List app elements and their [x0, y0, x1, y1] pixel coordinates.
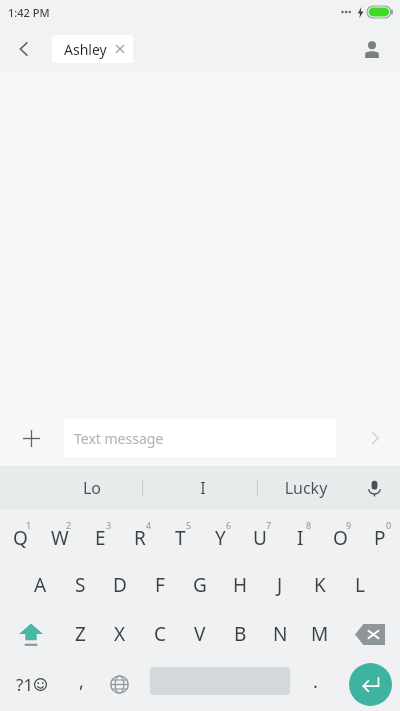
staticText: Z — [75, 621, 86, 647]
staticText: 1:42 PM — [8, 5, 50, 20]
staticText: D — [113, 572, 127, 598]
button[interactable]: 9 — [320, 509, 360, 559]
staticText: 7 — [266, 519, 272, 531]
staticText: 2 — [66, 519, 72, 531]
staticText: Ashley — [64, 40, 107, 59]
button[interactable]: I — [190, 477, 216, 499]
staticText: M — [311, 621, 329, 647]
button[interactable]: A — [20, 559, 60, 610]
button[interactable]: 0 — [360, 509, 400, 559]
button[interactable]: 3 — [80, 509, 120, 559]
button[interactable]: C — [140, 610, 180, 658]
staticText: J — [277, 572, 283, 598]
button[interactable]: G — [180, 559, 220, 610]
staticText: R — [134, 525, 146, 551]
button[interactable]: Lo — [78, 477, 106, 499]
staticText: F — [155, 572, 165, 598]
button[interactable]: 4 — [120, 509, 160, 559]
button[interactable]: Z — [60, 610, 100, 658]
staticText: , — [79, 669, 84, 694]
button[interactable]: , — [62, 658, 100, 711]
button[interactable]: 7 — [240, 509, 280, 559]
button[interactable]: Shift — [0, 610, 62, 658]
staticText: W — [51, 525, 69, 551]
staticText: H — [233, 572, 248, 598]
staticText: ?1 — [16, 673, 34, 696]
button[interactable]: 8 — [280, 509, 320, 559]
staticText: V — [194, 621, 206, 647]
staticText: Y — [215, 525, 226, 551]
button[interactable]: N — [260, 610, 300, 658]
button[interactable]: L — [340, 559, 380, 610]
button[interactable]: S — [60, 559, 100, 610]
staticText: 0 — [386, 519, 392, 531]
staticText: L — [355, 572, 365, 598]
button[interactable]: Ashley — [52, 35, 133, 63]
button[interactable]: 2 — [40, 509, 80, 559]
button[interactable]: Change language — [100, 658, 138, 711]
staticText: S — [75, 572, 86, 598]
button[interactable]: 5 — [160, 509, 200, 559]
button[interactable]: Enter — [340, 658, 400, 711]
button[interactable]: 1 — [0, 509, 40, 559]
staticText: N — [273, 621, 288, 647]
staticText: K — [314, 572, 326, 598]
button[interactable]: Send — [358, 421, 392, 455]
button[interactable]: Add attachment — [14, 421, 48, 455]
staticText: I — [297, 525, 304, 551]
staticText: Q — [13, 525, 28, 551]
staticText: 8 — [306, 519, 312, 531]
button[interactable]: . — [296, 658, 334, 711]
button[interactable]: Back — [6, 31, 42, 67]
button[interactable]: X — [100, 610, 140, 658]
staticText: G — [193, 572, 207, 598]
staticText: O — [333, 525, 348, 551]
button[interactable]: Voice input — [356, 470, 392, 506]
staticText: T — [175, 525, 186, 551]
staticText: 3 — [106, 519, 112, 531]
button[interactable]: Symbols and emoji — [0, 658, 62, 711]
button[interactable]: H — [220, 559, 260, 610]
button[interactable]: D — [100, 559, 140, 610]
button[interactable]: V — [180, 610, 220, 658]
button[interactable]: Contacts — [352, 29, 392, 69]
button[interactable]: B — [220, 610, 260, 658]
staticText: X — [114, 621, 126, 647]
staticText: U — [253, 525, 267, 551]
button[interactable]: M — [300, 610, 340, 658]
button[interactable]: Backspace — [340, 610, 400, 658]
button[interactable]: 6 — [200, 509, 240, 559]
button[interactable]: J — [260, 559, 300, 610]
staticText: C — [154, 621, 167, 647]
staticText: A — [34, 572, 47, 598]
staticText: 5 — [186, 519, 192, 531]
button[interactable]: Text message — [64, 419, 336, 457]
button[interactable]: Lucky — [281, 477, 331, 499]
staticText: . — [313, 669, 318, 694]
staticText: 9 — [346, 519, 352, 531]
staticText: E — [95, 525, 106, 551]
staticText: 4 — [146, 519, 152, 531]
staticText: 1 — [26, 519, 32, 531]
staticText: Text message — [74, 429, 164, 448]
button[interactable]: F — [140, 559, 180, 610]
staticText: 6 — [226, 519, 232, 531]
button[interactable]: K — [300, 559, 340, 610]
staticText: B — [234, 621, 247, 647]
staticText: P — [374, 525, 386, 551]
